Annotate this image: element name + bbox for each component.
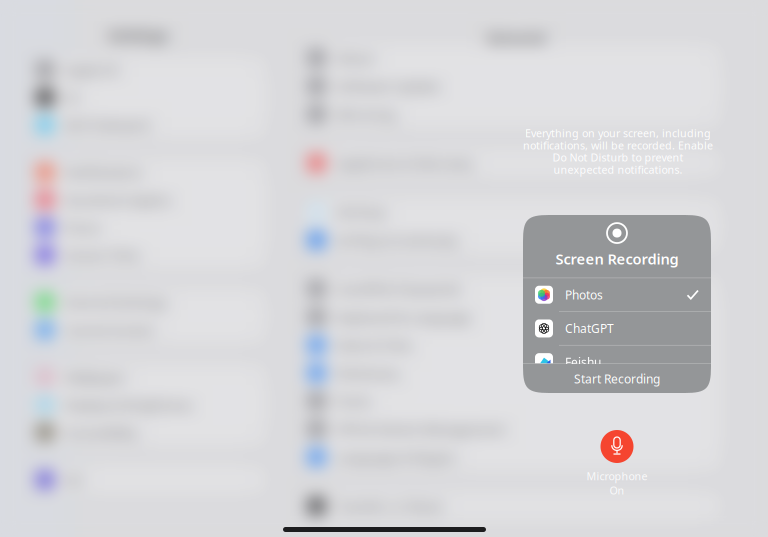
staticText: Photos [565,287,603,303]
staticText: Everything on your screen, including [525,126,711,140]
button[interactable]: Transfer or Reset [302,492,722,520]
button[interactable]: Start Recording [523,364,711,394]
staticText: Screen Recording [555,249,678,269]
button[interactable]: Display & Brightness [30,391,267,418]
button[interactable]: Accessibility [30,418,267,446]
staticText: On [609,483,624,497]
button[interactable]: AirPlay & Continuity [302,226,722,254]
button[interactable]: ChatGPT [523,312,711,345]
button[interactable]: Control Center [30,316,267,343]
button[interactable]: Wallpaper [30,363,267,391]
button[interactable]: AirDrop [302,198,722,226]
button[interactable]: Fonts [302,387,722,415]
button[interactable]: Keyboard & Language [302,303,722,331]
button[interactable]: Microphone On [567,430,667,497]
staticText: Wallpaper [64,368,126,386]
button[interactable]: Screen Time [30,241,267,268]
button[interactable]: Mirroring [302,100,722,128]
staticText: Settings [108,25,167,45]
staticText: unexpected notifications. [553,162,682,177]
button[interactable]: VPN & Device Management [302,415,722,443]
button[interactable]: Software Update [302,72,722,100]
button[interactable]: General Settings [30,288,267,316]
button[interactable]: Photos [523,278,711,311]
button[interactable]: About [302,44,722,72]
button[interactable]: Language & Region [302,443,722,471]
button[interactable]: Apple ID [30,56,267,83]
staticText: Microphone [586,469,647,483]
staticText: Feishu [565,354,601,370]
staticText: Do Not Disturb to prevent [552,150,683,164]
staticText: Start Recording [574,371,660,387]
staticText: General [487,28,545,47]
staticText: ChatGPT [565,320,614,336]
staticText: notifications, will be recorded. Enable [523,138,713,152]
button[interactable]: Siri [30,466,267,493]
button[interactable]: AppleCare & Warranty [302,149,722,177]
button[interactable]: Autofill & Passwords [302,275,722,303]
button[interactable]: Focus [30,213,267,241]
button[interactable]: Sounds & Haptics [30,186,267,213]
button[interactable]: Notifications [30,158,267,186]
button[interactable]: Dictionary [302,359,722,387]
button[interactable]: Wi-Fi Network [30,111,267,138]
button[interactable]: Date & Time [302,331,722,359]
button[interactable]: Feishu [523,346,711,379]
button[interactable]: AI [30,83,267,111]
